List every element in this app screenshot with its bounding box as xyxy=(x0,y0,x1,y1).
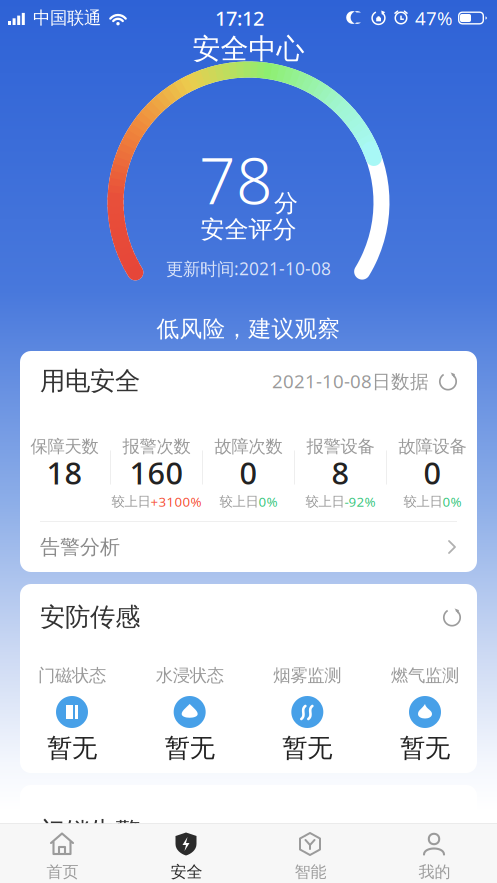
staticText: 低风险，建议观察 xyxy=(156,315,340,343)
staticText: 安全 xyxy=(170,862,202,882)
staticText: 智能 xyxy=(294,862,326,882)
staticText: 我的 xyxy=(418,862,450,882)
staticText: 78 xyxy=(199,137,273,222)
button[interactable]: 安全 xyxy=(124,824,248,883)
staticText: 燃气监测 xyxy=(391,665,459,686)
staticText: +3100% xyxy=(150,493,201,510)
staticText: 安防传感 xyxy=(40,601,140,632)
staticText: 暂无 xyxy=(282,732,332,763)
staticText: 0 xyxy=(239,452,257,493)
staticText: 17:12 xyxy=(215,5,264,31)
staticText: 较上日 xyxy=(219,493,258,510)
staticText: 较上日 xyxy=(403,493,442,510)
staticText: 暂无 xyxy=(400,732,450,763)
staticText: 安全中心 xyxy=(192,32,304,66)
staticText: 18 xyxy=(46,452,82,493)
button[interactable]: 告警分析 xyxy=(20,522,477,572)
staticText: 门锁告警 xyxy=(40,816,140,847)
staticText: 安全评分 xyxy=(200,215,296,244)
staticText: 0% xyxy=(258,493,277,510)
button[interactable]: 刷新 xyxy=(437,602,467,632)
staticText: 水浸状态 xyxy=(156,665,224,686)
staticText: 0% xyxy=(442,493,461,510)
staticText: 故障次数 xyxy=(214,436,282,457)
staticText: 暂无 xyxy=(165,732,215,763)
staticText: 较上日 xyxy=(111,493,150,510)
staticText: 用电安全 xyxy=(40,365,140,396)
staticText: 2021-10-08日数据 xyxy=(272,369,429,393)
staticText: 告警分析 xyxy=(40,535,120,559)
staticText: 暂无 xyxy=(47,732,97,763)
button[interactable]: 刷新 xyxy=(429,366,467,396)
staticText: 报警设备 xyxy=(306,436,374,457)
button[interactable]: 智能 xyxy=(248,824,372,883)
staticText: 较上日 xyxy=(305,493,344,510)
staticText: 保障天数 xyxy=(30,436,98,457)
button[interactable]: 首页 xyxy=(0,824,124,883)
staticText: 47% xyxy=(415,6,453,30)
staticText: 8 xyxy=(331,452,349,493)
staticText: 0 xyxy=(423,452,441,493)
staticText: 故障设备 xyxy=(398,436,466,457)
staticText: 分 xyxy=(274,188,298,218)
staticText: 烟雾监测 xyxy=(273,665,341,686)
staticText: 首页 xyxy=(46,862,78,882)
staticText: 报警次数 xyxy=(122,436,190,457)
staticText: 中国联通 xyxy=(33,7,101,29)
button[interactable]: 我的 xyxy=(372,824,496,883)
staticText: 更新时间:2021-10-08 xyxy=(166,257,331,280)
staticText: 160 xyxy=(129,452,183,493)
staticText: -92% xyxy=(344,493,375,510)
staticText: 门磁状态 xyxy=(38,665,106,686)
